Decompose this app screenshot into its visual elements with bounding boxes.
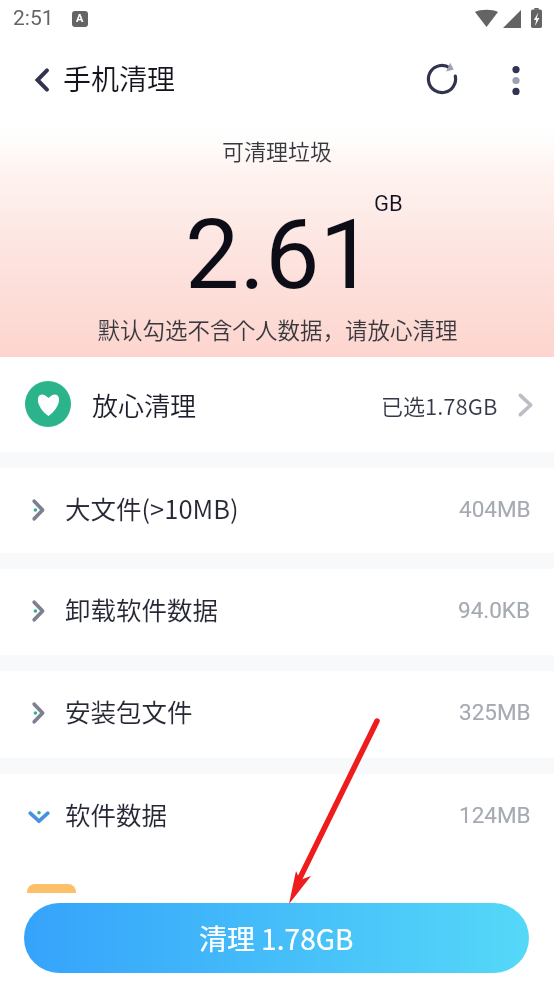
staticText: 已选1.78GB [381,389,498,421]
staticText: 手机清理 [63,58,176,99]
button[interactable]: 放心清理 [0,357,554,452]
staticText: 124MB [459,802,531,828]
staticText: 325MB [459,699,531,725]
button[interactable]: Refresh [421,58,463,100]
staticText: 2:51 [13,6,54,31]
staticText: 94.0KB [458,597,531,623]
staticText: GB [374,191,403,217]
staticText: A [76,12,84,25]
staticText: 安装包文件 [65,692,193,729]
staticText: 默认勾选不含个人数据，请放心清理 [97,313,458,346]
staticText: 卸载软件数据 [65,590,219,627]
staticText: 大文件(>10MB) [65,489,239,526]
button[interactable]: 卸载软件数据 [0,566,554,651]
button[interactable]: Back [23,60,63,100]
button[interactable]: 清理 1.78GB [24,903,529,973]
staticText: 放心清理 [92,386,197,424]
staticText: 可清理垃圾 [222,134,333,166]
button[interactable]: 大文件(>10MB) [0,465,554,550]
button[interactable]: 安装包文件 [0,668,554,753]
staticText: 2.61 [185,198,375,312]
button[interactable]: 软件数据 [0,771,554,856]
staticText: 404MB [459,496,531,522]
staticText: 软件数据 [65,795,168,832]
button[interactable]: More options [495,59,537,101]
staticText: 清理 1.78GB [199,918,354,959]
